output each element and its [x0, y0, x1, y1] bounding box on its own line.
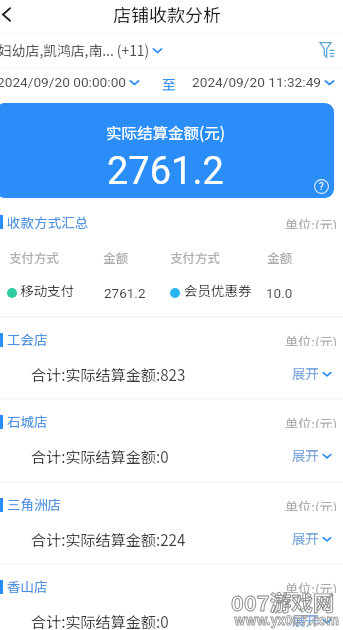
- staticText: 会员优惠券: [184, 280, 252, 300]
- staticText: 金额: [103, 248, 129, 266]
- button[interactable]: 2024/09/20 00:00:00: [0, 74, 140, 90]
- button[interactable]: Help: [314, 179, 329, 194]
- staticText: 2024/09/20 00:00:00: [0, 74, 127, 90]
- staticText: 2024/09/20 11:32:49: [192, 74, 322, 90]
- staticText: 展开: [292, 446, 319, 465]
- staticText: 展开: [292, 529, 319, 548]
- button[interactable]: Filter: [316, 38, 338, 62]
- staticText: 金额: [267, 248, 293, 266]
- staticText: 单位:(元): [285, 497, 338, 511]
- staticText: 移动支付: [20, 280, 74, 300]
- staticText: 收款方式汇总: [7, 212, 88, 232]
- staticText: 合计:实际结算金额:0: [31, 610, 169, 630]
- staticText: 合计:实际结算金额:224: [31, 528, 186, 550]
- staticText: 支付方式: [9, 248, 60, 266]
- staticText: 合计:实际结算金额:823: [31, 363, 186, 385]
- button[interactable]: 合计:实际结算金额:823: [0, 356, 343, 390]
- button[interactable]: 2024/09/20 11:32:49: [192, 74, 335, 90]
- staticText: 支付方式: [170, 248, 221, 266]
- staticText: 展开: [292, 611, 319, 630]
- staticText: ?: [319, 181, 324, 193]
- staticText: 2761.2: [107, 149, 224, 194]
- button[interactable]: 妇幼店,凯鸿店,南... (+11): [0, 40, 163, 60]
- button[interactable]: 合计:实际结算金额:0: [0, 603, 343, 630]
- staticText: 香山店: [7, 576, 48, 596]
- staticText: 10.0: [266, 285, 293, 301]
- staticText: www.yx007.com: [234, 610, 339, 629]
- staticText: 2761.2: [104, 285, 146, 301]
- staticText: 单位:(元): [285, 332, 338, 346]
- staticText: 店铺收款分析: [113, 1, 221, 27]
- staticText: 单位:(元): [285, 579, 338, 593]
- staticText: 石城店: [7, 411, 48, 431]
- staticText: 实际结算金额(元): [106, 121, 225, 143]
- button[interactable]: Back: [0, 0, 19, 28]
- staticText: 007游戏网: [231, 586, 335, 617]
- staticText: 至: [162, 74, 176, 94]
- staticText: 单位:(元): [285, 215, 338, 229]
- staticText: 展开: [292, 364, 319, 383]
- staticText: 合计:实际结算金额:0: [31, 445, 169, 467]
- staticText: 妇幼店,凯鸿店,南... (+11): [0, 40, 150, 60]
- staticText: 三角洲店: [7, 494, 61, 514]
- staticText: 工会店: [7, 329, 48, 349]
- button[interactable]: 合计:实际结算金额:224: [0, 521, 343, 555]
- staticText: 单位:(元): [285, 414, 338, 428]
- button[interactable]: 合计:实际结算金额:0: [0, 438, 343, 472]
